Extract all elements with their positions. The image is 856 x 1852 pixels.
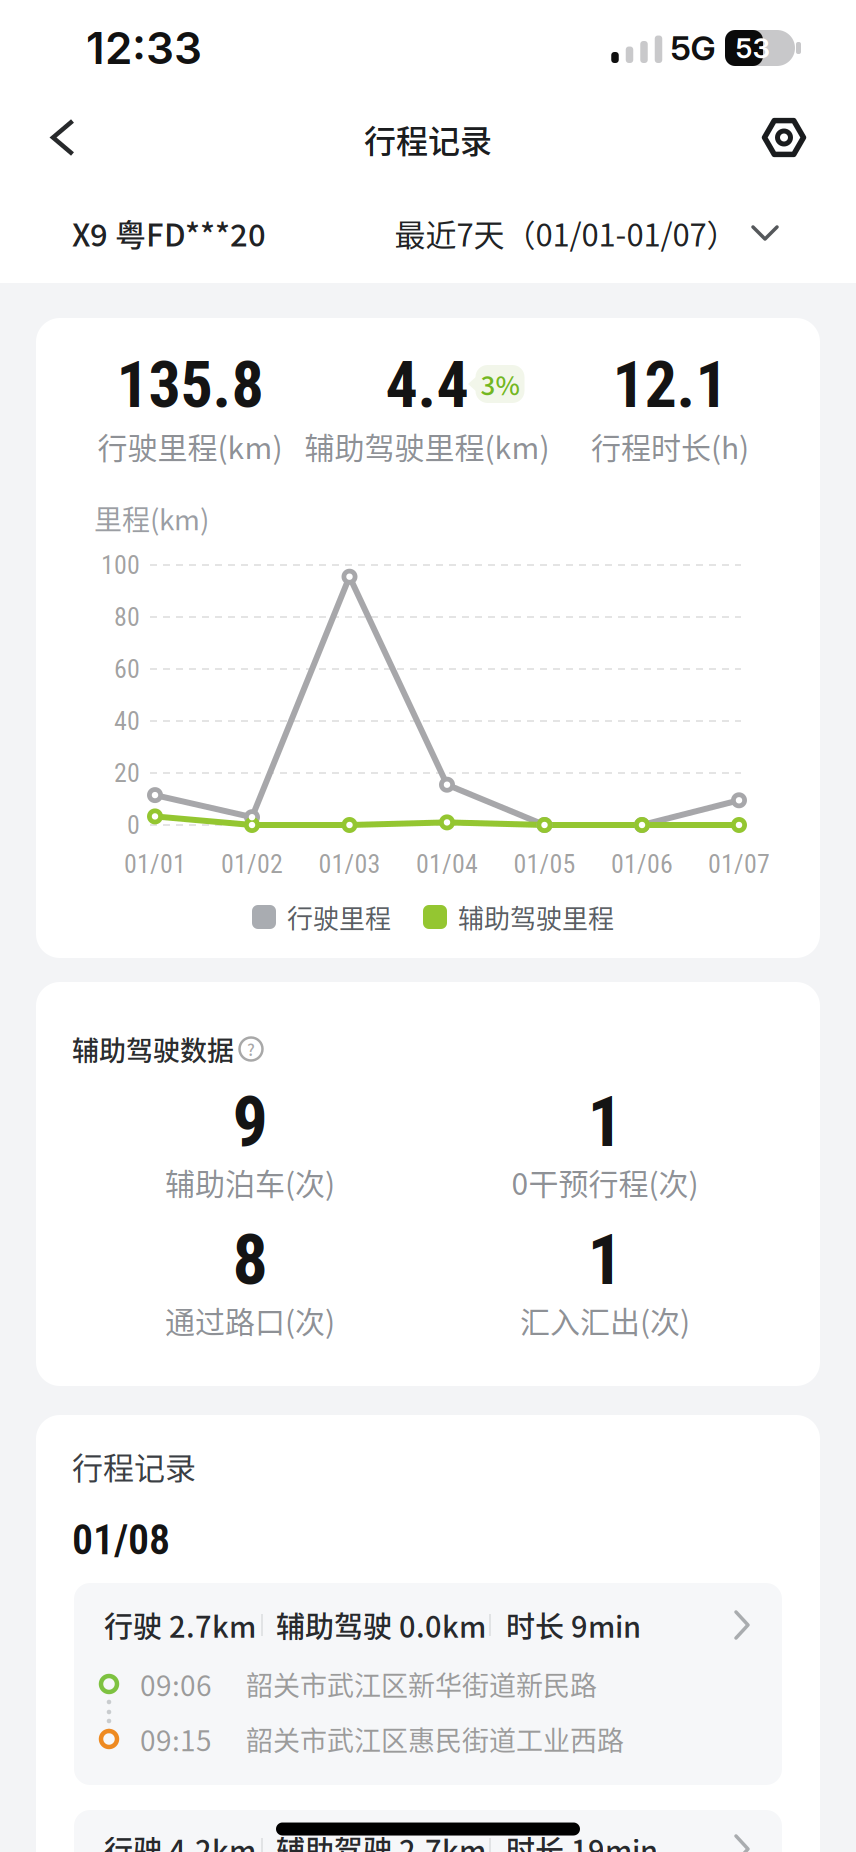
- staticText: 1: [587, 1219, 622, 1301]
- staticText: 12:33: [86, 21, 202, 75]
- staticText: 01/08: [72, 1515, 170, 1565]
- staticText: 0: [127, 810, 140, 840]
- staticText: 3%: [480, 365, 519, 403]
- staticText: 01/07: [708, 849, 770, 879]
- staticText: 01/04: [416, 849, 478, 879]
- staticText: 最近7天（01/01-01/07）: [394, 211, 737, 255]
- staticText: 135.8: [116, 347, 263, 422]
- staticText: 12.1: [612, 347, 727, 422]
- staticText: 行程时长(h): [591, 424, 749, 468]
- staticText: 时长 9min: [506, 1604, 641, 1646]
- staticText: 60: [114, 654, 140, 684]
- staticText: 行驶里程: [287, 898, 391, 936]
- staticText: 1: [587, 1081, 622, 1163]
- staticText: 辅助驾驶 0.0km: [276, 1604, 486, 1646]
- staticText: 09:15: [140, 1719, 212, 1759]
- staticText: 20: [114, 758, 140, 788]
- staticText: 汇入汇出(次): [520, 1298, 690, 1342]
- staticText: 辅助驾驶里程(km): [304, 424, 549, 468]
- staticText: ?: [247, 1037, 255, 1061]
- staticText: 辅助驾驶里程: [458, 898, 614, 936]
- staticText: 53: [735, 31, 770, 65]
- staticText: 8: [232, 1219, 267, 1301]
- staticText: 行驶 2.7km: [104, 1604, 256, 1646]
- staticText: 行驶 4.2km: [104, 1828, 256, 1852]
- staticText: 09:06: [140, 1664, 212, 1704]
- staticText: 辅助驾驶 2.7km: [276, 1828, 486, 1852]
- staticText: 行程记录: [72, 1444, 196, 1488]
- staticText: 时长 19min: [506, 1828, 658, 1852]
- staticText: 80: [114, 602, 140, 632]
- staticText: 行程记录: [364, 116, 492, 162]
- staticText: X9 粤FD***20: [72, 211, 266, 255]
- staticText: 里程(km): [94, 498, 209, 538]
- staticText: 4.4: [385, 347, 468, 422]
- staticText: 通过路口(次): [165, 1298, 335, 1342]
- staticText: 100: [101, 550, 140, 580]
- staticText: 01/01: [124, 849, 186, 879]
- staticText: 辅助泊车(次): [165, 1160, 335, 1204]
- staticText: 辅助驾驶数据: [72, 1029, 234, 1069]
- staticText: 行驶里程(km): [97, 424, 282, 468]
- staticText: 韶关市武江区惠民街道工业西路: [246, 1719, 624, 1759]
- staticText: 0干预行程(次): [511, 1160, 698, 1204]
- staticText: 01/05: [513, 849, 575, 879]
- staticText: 韶关市武江区新华街道新民路: [246, 1664, 597, 1704]
- staticText: 5G: [670, 27, 715, 68]
- staticText: 01/03: [318, 849, 380, 879]
- staticText: 9: [232, 1081, 267, 1163]
- staticText: 01/02: [221, 849, 283, 879]
- staticText: 01/06: [611, 849, 673, 879]
- staticText: 40: [114, 706, 140, 736]
